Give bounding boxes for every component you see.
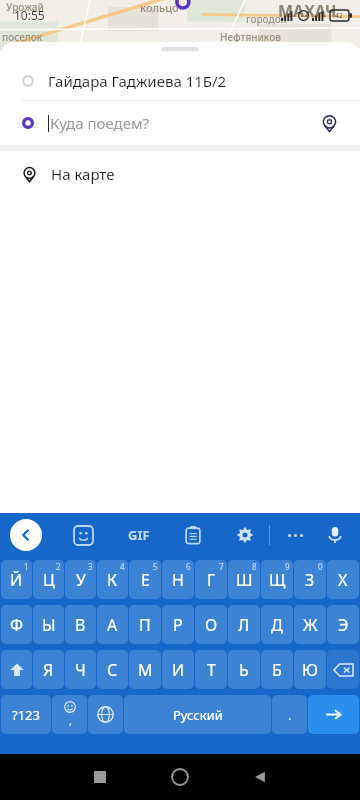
button[interactable]: Ещё bbox=[280, 520, 310, 550]
button[interactable]: Голосовой ввод bbox=[320, 520, 350, 550]
staticText: Куда поедем? bbox=[50, 113, 149, 133]
staticText: городок bbox=[246, 12, 287, 26]
button[interactable]: Гайдара Гаджиева 11Б/2 bbox=[0, 62, 360, 100]
staticText: 10:55 bbox=[14, 7, 45, 23]
staticText: Ш bbox=[236, 569, 253, 591]
button[interactable]: Ж bbox=[294, 605, 326, 644]
button[interactable]: Ь bbox=[228, 650, 260, 689]
staticText: Й bbox=[10, 569, 23, 591]
staticText: 9 bbox=[285, 561, 290, 572]
button[interactable]: Удалить bbox=[327, 650, 359, 689]
staticText: 6 bbox=[186, 561, 191, 572]
button[interactable]: Э bbox=[327, 605, 359, 644]
staticText: GIF bbox=[128, 526, 150, 544]
button[interactable]: GIF bbox=[122, 518, 156, 552]
staticText: 42 bbox=[335, 11, 344, 21]
button[interactable]: У bbox=[65, 560, 96, 599]
button[interactable]: К bbox=[97, 560, 128, 599]
button[interactable]: Б bbox=[261, 650, 293, 689]
staticText: Я bbox=[43, 659, 54, 681]
staticText: Гайдара Гаджиева 11Б/2 bbox=[48, 71, 227, 91]
staticText: ?123 bbox=[12, 706, 40, 724]
button[interactable]: Я bbox=[33, 650, 64, 689]
staticText: 7 bbox=[219, 561, 224, 572]
staticText: поселок bbox=[2, 30, 43, 44]
staticText: . bbox=[288, 706, 292, 724]
button[interactable]: М bbox=[129, 650, 161, 689]
staticText: Т bbox=[207, 659, 216, 681]
button[interactable]: Н bbox=[162, 560, 194, 599]
staticText: 4 bbox=[120, 561, 125, 572]
staticText: Ь bbox=[239, 659, 249, 681]
button[interactable]: Буфер обмена bbox=[178, 520, 208, 550]
button[interactable]: Недавние приложения bbox=[80, 757, 120, 797]
button[interactable]: Русский bbox=[124, 695, 271, 734]
staticText: Д bbox=[271, 614, 283, 636]
button[interactable]: Назад bbox=[10, 519, 42, 551]
button[interactable]: И bbox=[162, 650, 194, 689]
button[interactable]: Р bbox=[162, 605, 194, 644]
button[interactable]: Ш bbox=[228, 560, 260, 599]
button[interactable]: Й bbox=[1, 560, 32, 599]
staticText: П bbox=[139, 614, 151, 636]
staticText: В bbox=[75, 614, 86, 636]
button[interactable]: ?123 bbox=[1, 695, 51, 734]
button[interactable]: . bbox=[272, 695, 307, 734]
button[interactable]: Ю bbox=[294, 650, 326, 689]
button[interactable]: Ввод bbox=[308, 695, 359, 734]
button[interactable]: Ы bbox=[33, 605, 64, 644]
staticText: Урожай bbox=[6, 0, 44, 14]
staticText: И bbox=[172, 659, 185, 681]
button[interactable]: Shift bbox=[1, 650, 32, 689]
staticText: 3 bbox=[88, 561, 93, 572]
staticText: Ф bbox=[10, 614, 24, 636]
button[interactable]: В bbox=[65, 605, 96, 644]
button[interactable]: З bbox=[294, 560, 326, 599]
button[interactable]: О bbox=[195, 605, 227, 644]
staticText: , bbox=[69, 713, 72, 728]
staticText: М bbox=[138, 659, 153, 681]
staticText: 2 bbox=[56, 561, 61, 572]
staticText: Н bbox=[172, 569, 184, 591]
button[interactable]: Г bbox=[195, 560, 227, 599]
button[interactable]: Щ bbox=[261, 560, 293, 599]
button[interactable]: Ф bbox=[1, 605, 32, 644]
button[interactable]: П bbox=[129, 605, 161, 644]
button[interactable]: Назад bbox=[240, 757, 280, 797]
staticText: Щ bbox=[269, 569, 286, 591]
staticText: Р bbox=[173, 614, 183, 636]
button[interactable]: Д bbox=[261, 605, 293, 644]
button[interactable]: Стикеры bbox=[68, 520, 98, 550]
button[interactable]: С bbox=[97, 650, 128, 689]
button[interactable]: Выбрать на карте bbox=[314, 108, 344, 138]
staticText: С bbox=[107, 659, 118, 681]
staticText: А bbox=[107, 614, 118, 636]
button[interactable]: Настройки bbox=[230, 520, 260, 550]
staticText: К bbox=[107, 569, 118, 591]
staticText: Ы bbox=[42, 614, 56, 636]
button[interactable]: Л bbox=[228, 605, 260, 644]
staticText: Г bbox=[207, 569, 216, 591]
staticText: 5 bbox=[153, 561, 158, 572]
button[interactable]: Е bbox=[129, 560, 161, 599]
staticText: Б bbox=[272, 659, 282, 681]
button[interactable]: Куда поедем? bbox=[0, 101, 360, 145]
button[interactable]: Эмодзи bbox=[52, 695, 87, 734]
staticText: 8 bbox=[252, 561, 257, 572]
button[interactable]: Х bbox=[327, 560, 359, 599]
staticText: Ю bbox=[302, 659, 318, 681]
staticText: На карте bbox=[51, 164, 115, 184]
button[interactable]: Т bbox=[195, 650, 227, 689]
staticText: У bbox=[76, 569, 86, 591]
staticText: Л bbox=[238, 614, 250, 636]
staticText: кольцо bbox=[140, 0, 179, 15]
button[interactable]: Главный экран bbox=[160, 757, 200, 797]
staticText: 0 bbox=[318, 561, 323, 572]
button[interactable]: А bbox=[97, 605, 128, 644]
button[interactable]: Ц bbox=[33, 560, 64, 599]
button[interactable]: На карте bbox=[0, 151, 360, 197]
button[interactable]: Сменить язык bbox=[88, 695, 123, 734]
staticText: Нефтяников bbox=[220, 30, 281, 44]
staticText: Ц bbox=[43, 569, 55, 591]
button[interactable]: Ч bbox=[65, 650, 96, 689]
